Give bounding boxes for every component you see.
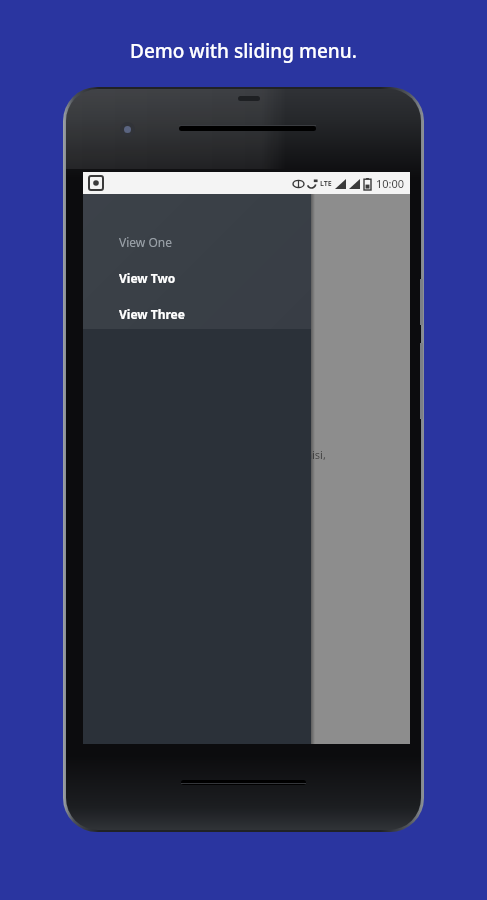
button[interactable]: View Three [83, 294, 311, 330]
staticText: 10:00 [376, 176, 405, 191]
staticText: View Three [119, 306, 185, 322]
button[interactable]: View One [83, 194, 311, 258]
staticText: lectus. Curabitur sit amet condimentum n… [97, 447, 326, 462]
other: Screen capture [89, 176, 103, 190]
staticText: View Two [119, 270, 176, 286]
staticText: Demo with sliding menu. [130, 38, 357, 64]
button[interactable]: View Two [83, 258, 311, 294]
staticText: This is a sample view to display [97, 224, 257, 239]
staticText: LTE [320, 179, 332, 189]
staticText: View One [119, 234, 172, 250]
